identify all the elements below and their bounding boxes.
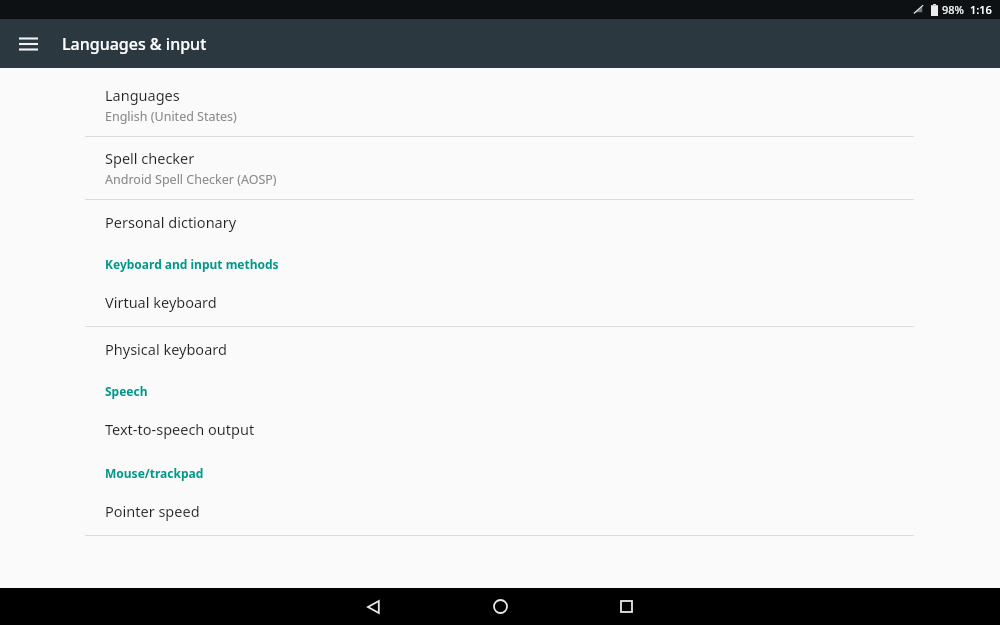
staticText: Text-to-speech output <box>105 419 255 439</box>
button[interactable]: Pointer speed <box>0 487 1000 535</box>
button[interactable]: Personal dictionary <box>0 200 1000 242</box>
staticText: Virtual keyboard <box>105 292 217 312</box>
staticText: Pointer speed <box>105 501 200 521</box>
staticText: Speech <box>105 383 148 399</box>
button[interactable]: Languages <box>0 74 1000 136</box>
button[interactable]: Spell checker <box>0 137 1000 199</box>
button[interactable]: Text-to-speech output <box>0 405 1000 451</box>
button[interactable]: Physical keyboard <box>0 327 1000 369</box>
staticText: Languages <box>105 85 180 105</box>
button[interactable]: Open navigation menu <box>10 26 46 62</box>
staticText: Keyboard and input methods <box>105 256 279 272</box>
staticText: Languages & input <box>62 33 207 55</box>
button[interactable]: Virtual keyboard <box>0 278 1000 326</box>
staticText: Personal dictionary <box>105 212 237 232</box>
staticText: Spell checker <box>105 148 195 168</box>
staticText: Physical keyboard <box>105 339 227 359</box>
staticText: English (United States) <box>105 108 237 125</box>
staticText: 1:16 <box>970 2 992 17</box>
staticText: Mouse/trackpad <box>105 465 204 481</box>
button[interactable]: Home <box>437 588 563 625</box>
button[interactable]: Back <box>311 588 437 625</box>
staticText: Android Spell Checker (AOSP) <box>105 171 277 188</box>
button[interactable]: Recent apps <box>563 588 689 625</box>
staticText: 98% <box>942 2 964 17</box>
